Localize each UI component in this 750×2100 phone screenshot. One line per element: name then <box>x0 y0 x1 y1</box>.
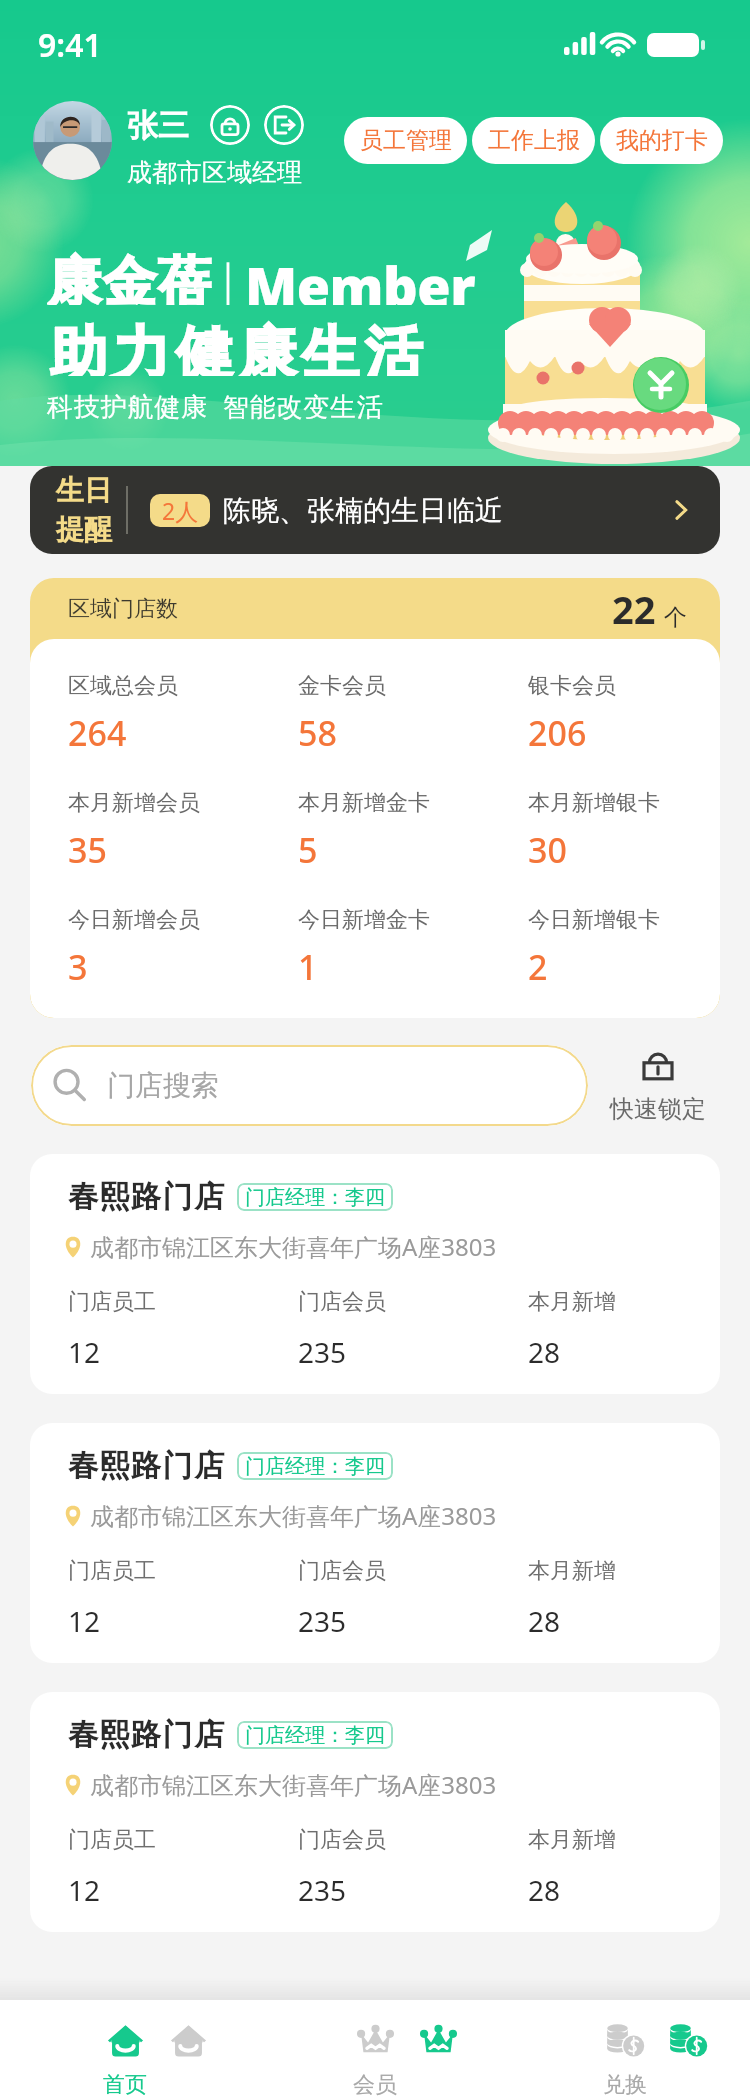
staticText: 本月新增 <box>528 1288 616 1316</box>
staticText: 30 <box>528 827 567 873</box>
staticText: 9:41 <box>38 23 102 67</box>
button[interactable]: 工作上报 <box>472 117 595 164</box>
staticText: Member <box>245 249 476 305</box>
staticText: 28 <box>528 1602 561 1640</box>
staticText: 本月新增银卡 <box>528 789 660 817</box>
staticText: 生日 <box>56 473 112 508</box>
staticText: 陈晓、张楠的生日临近 <box>223 493 503 528</box>
button[interactable]: 春熙路门店 <box>30 1692 720 1932</box>
button[interactable]: 员工管理 <box>344 117 467 164</box>
staticText: 员工管理 <box>360 126 452 155</box>
staticText: 成都市锦江区东大街喜年广场A座3803 <box>90 1230 497 1263</box>
staticText: 首页 <box>103 2071 147 2099</box>
staticText: 235 <box>298 1871 347 1909</box>
button[interactable]: 我的打卡 <box>600 117 723 164</box>
staticText: 成都市锦江区东大街喜年广场A座3803 <box>90 1499 497 1532</box>
staticText: 快速锁定 <box>610 1094 706 1124</box>
staticText: 门店会员 <box>298 1826 386 1854</box>
staticText: 工作上报 <box>488 126 580 155</box>
staticText: 张三 <box>127 106 189 145</box>
staticText: 门店经理：李四 <box>245 1185 385 1210</box>
button[interactable]: Lock <box>210 105 250 145</box>
button[interactable]: 春熙路门店 <box>30 1423 720 1663</box>
staticText: 2人 <box>162 495 199 526</box>
staticText: 我的打卡 <box>616 126 708 155</box>
staticText: 58 <box>298 710 337 756</box>
staticText: 春熙路门店 <box>68 1716 226 1754</box>
staticText: 2 <box>528 944 548 990</box>
staticText: 门店员工 <box>68 1557 156 1585</box>
staticText: 5 <box>298 827 318 873</box>
staticText: 科技护航健康 智能改变生活 <box>47 388 384 424</box>
staticText: 235 <box>298 1333 347 1371</box>
staticText: 门店会员 <box>298 1557 386 1585</box>
staticText: 本月新增 <box>528 1557 616 1585</box>
staticText: 206 <box>528 710 587 756</box>
staticText: 本月新增 <box>528 1826 616 1854</box>
staticText: 区域门店数 <box>68 595 178 623</box>
staticText: 助力健康生活 <box>47 318 425 376</box>
button[interactable]: 兑换 <box>500 2000 750 2100</box>
staticText: 门店会员 <box>298 1288 386 1316</box>
staticText: 22 <box>612 583 656 635</box>
button[interactable]: 会员 <box>250 2000 500 2100</box>
staticText: 门店员工 <box>68 1288 156 1316</box>
staticText: 3 <box>68 944 88 990</box>
staticText: 235 <box>298 1602 347 1640</box>
staticText: 金卡会员 <box>298 672 386 700</box>
staticText: 康金蓓 <box>47 249 212 305</box>
staticText: 28 <box>528 1871 561 1909</box>
button[interactable]: 首页 <box>0 2000 250 2100</box>
staticText: 28 <box>528 1333 561 1371</box>
staticText: 本月新增会员 <box>68 789 200 817</box>
button[interactable]: 门店搜索 <box>31 1045 588 1126</box>
button[interactable]: 春熙路门店 <box>30 1154 720 1394</box>
staticText: 本月新增金卡 <box>298 789 430 817</box>
staticText: 门店员工 <box>68 1826 156 1854</box>
staticText: 1 <box>298 944 318 990</box>
button[interactable]: 快速锁定 <box>610 1048 706 1124</box>
staticText: | <box>215 249 242 305</box>
staticText: 门店经理：李四 <box>245 1723 385 1748</box>
staticText: 兑换 <box>603 2071 647 2099</box>
button[interactable]: Log out <box>264 105 304 145</box>
staticText: 门店经理：李四 <box>245 1454 385 1479</box>
staticText: 提醒 <box>56 512 112 547</box>
staticText: 12 <box>68 1602 101 1640</box>
staticText: 成都市锦江区东大街喜年广场A座3803 <box>90 1768 497 1801</box>
staticText: 区域总会员 <box>68 672 178 700</box>
staticText: 春熙路门店 <box>68 1447 226 1485</box>
staticText: 银卡会员 <box>528 672 616 700</box>
staticText: 今日新增会员 <box>68 906 200 934</box>
staticText: 12 <box>68 1333 101 1371</box>
staticText: 12 <box>68 1871 101 1909</box>
staticText: 今日新增金卡 <box>298 906 430 934</box>
staticText: 成都市区域经理 <box>127 157 302 188</box>
staticText: 个 <box>664 603 687 632</box>
button[interactable]: 生日 <box>30 466 720 554</box>
staticText: 今日新增银卡 <box>528 906 660 934</box>
staticText: 春熙路门店 <box>68 1178 226 1216</box>
staticText: 门店搜索 <box>107 1068 219 1103</box>
staticText: 264 <box>68 710 127 756</box>
staticText: 35 <box>68 827 107 873</box>
staticText: 会员 <box>353 2071 397 2099</box>
